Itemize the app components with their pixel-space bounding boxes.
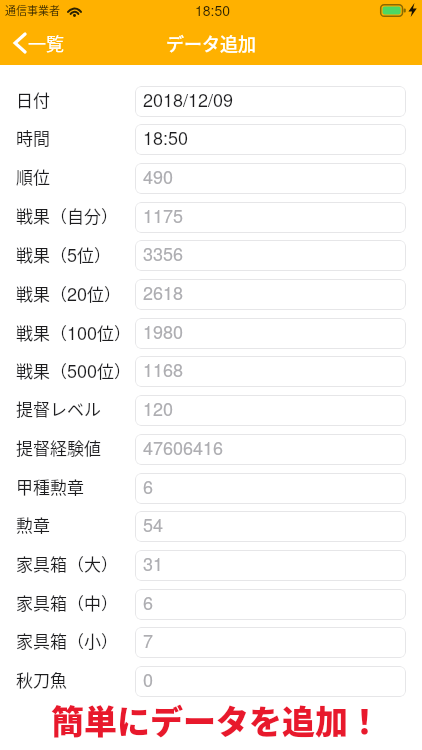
staticText: 提督レベル: [16, 396, 101, 421]
staticText: 18:50: [143, 124, 189, 150]
staticText: 家具箱（中）: [16, 590, 118, 615]
button[interactable]: 120: [135, 395, 406, 426]
staticText: 秋刀魚: [16, 667, 67, 692]
button[interactable]: 1168: [135, 356, 406, 387]
staticText: 通信事業者: [5, 2, 60, 18]
staticText: 提督経験値: [16, 435, 101, 460]
staticText: 甲種勲章: [16, 474, 84, 499]
staticText: 7: [143, 627, 154, 653]
staticText: 戦果（5位）: [16, 241, 112, 267]
staticText: 家具箱（小）: [16, 628, 118, 653]
staticText: 1168: [143, 356, 184, 382]
staticText: 家具箱（大）: [16, 551, 118, 576]
button[interactable]: 6: [135, 589, 406, 620]
button[interactable]: 18:50: [135, 124, 406, 155]
staticText: 3356: [143, 240, 184, 266]
staticText: 戦果（500位）: [16, 357, 132, 383]
button[interactable]: 7: [135, 627, 406, 658]
other: Back: [13, 33, 26, 53]
button[interactable]: 2018/12/09: [135, 86, 406, 117]
staticText: 戦果（自分）: [16, 203, 118, 228]
button[interactable]: 31: [135, 550, 406, 581]
staticText: 1175: [143, 202, 184, 228]
staticText: 31: [143, 550, 164, 576]
staticText: 簡単にデータを追加！: [51, 696, 381, 744]
button[interactable]: 6: [135, 473, 406, 504]
button[interactable]: 490: [135, 163, 406, 194]
staticText: 6: [143, 473, 154, 499]
staticText: 490: [143, 163, 174, 189]
button[interactable]: Back: [13, 30, 64, 56]
staticText: 時間: [16, 125, 50, 150]
button[interactable]: 54: [135, 511, 406, 542]
button[interactable]: 0: [135, 666, 406, 697]
staticText: 47606416: [143, 434, 224, 460]
staticText: 1980: [143, 318, 184, 344]
staticText: 勲章: [16, 512, 50, 537]
button[interactable]: 2618: [135, 279, 406, 310]
staticText: 2018/12/09: [143, 86, 234, 112]
staticText: 6: [143, 589, 154, 615]
button[interactable]: 1175: [135, 202, 406, 233]
staticText: 一覧: [28, 30, 64, 56]
staticText: 0: [143, 666, 154, 692]
staticText: 日付: [16, 87, 50, 112]
staticText: 順位: [16, 164, 50, 189]
staticText: 戦果（20位）: [16, 280, 122, 306]
staticText: 戦果（100位）: [16, 319, 132, 345]
button[interactable]: 3356: [135, 240, 406, 271]
staticText: 54: [143, 511, 164, 537]
staticText: 120: [143, 395, 174, 421]
staticText: データ追加: [166, 30, 256, 56]
staticText: 18:50: [195, 0, 231, 20]
button[interactable]: 47606416: [135, 434, 406, 465]
button[interactable]: 1980: [135, 318, 406, 349]
staticText: 2618: [143, 279, 184, 305]
